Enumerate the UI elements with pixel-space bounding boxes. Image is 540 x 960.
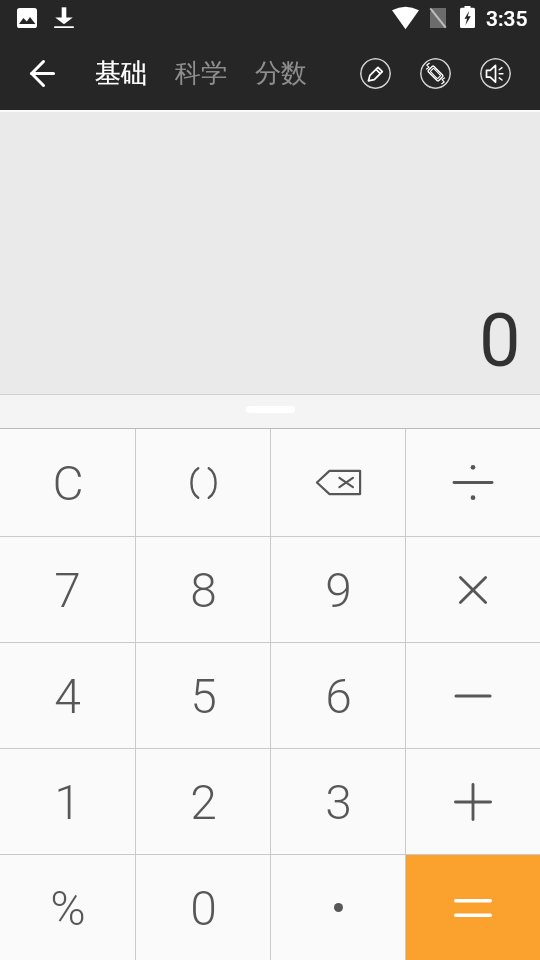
staticText: 1 <box>54 774 81 830</box>
button[interactable]: 8 <box>136 537 270 642</box>
button[interactable]: Sound <box>480 58 511 89</box>
button[interactable]: Multiply <box>406 537 540 642</box>
staticText: 3 <box>325 774 352 830</box>
staticText: 0 <box>479 297 521 384</box>
button[interactable]: 7 <box>0 537 135 642</box>
staticText: 2 <box>190 774 217 830</box>
button[interactable]: Back <box>14 45 70 101</box>
staticText: 基础 <box>95 57 147 90</box>
button[interactable]: Divide <box>406 429 540 536</box>
button[interactable]: 6 <box>271 643 405 748</box>
button[interactable]: 9 <box>271 537 405 642</box>
staticText: C <box>52 455 84 511</box>
button[interactable]: 4 <box>0 643 135 748</box>
button[interactable]: Equals <box>406 855 540 960</box>
staticText: 4 <box>54 668 81 724</box>
button[interactable]: 2 <box>136 749 270 854</box>
button[interactable]: C <box>0 429 135 536</box>
staticText: 8 <box>190 562 217 618</box>
button[interactable]: Decimal point <box>271 855 405 960</box>
staticText: 5 <box>190 668 217 724</box>
button[interactable]: Add <box>406 749 540 854</box>
button[interactable]: Vibration <box>420 58 451 89</box>
button[interactable]: 分数 <box>241 36 321 110</box>
button[interactable]: % <box>0 855 135 960</box>
button[interactable]: 0 <box>136 855 270 960</box>
button[interactable]: Backspace <box>271 429 405 536</box>
button[interactable]: Parentheses <box>136 429 270 536</box>
staticText: 3:35 <box>486 7 528 32</box>
staticText: 0 <box>190 880 217 936</box>
staticText: 7 <box>54 562 81 618</box>
staticText: 分数 <box>255 57 307 90</box>
button[interactable]: 科学 <box>161 36 241 110</box>
button[interactable]: Subtract <box>406 643 540 748</box>
button[interactable]: 1 <box>0 749 135 854</box>
button[interactable]: Edit note <box>360 58 391 89</box>
button[interactable]: 3 <box>271 749 405 854</box>
staticText: 6 <box>325 668 352 724</box>
staticText: % <box>50 880 86 936</box>
button[interactable]: 基础 <box>81 36 161 110</box>
button[interactable]: 5 <box>136 643 270 748</box>
staticText: 9 <box>325 562 352 618</box>
staticText: 科学 <box>175 57 227 90</box>
